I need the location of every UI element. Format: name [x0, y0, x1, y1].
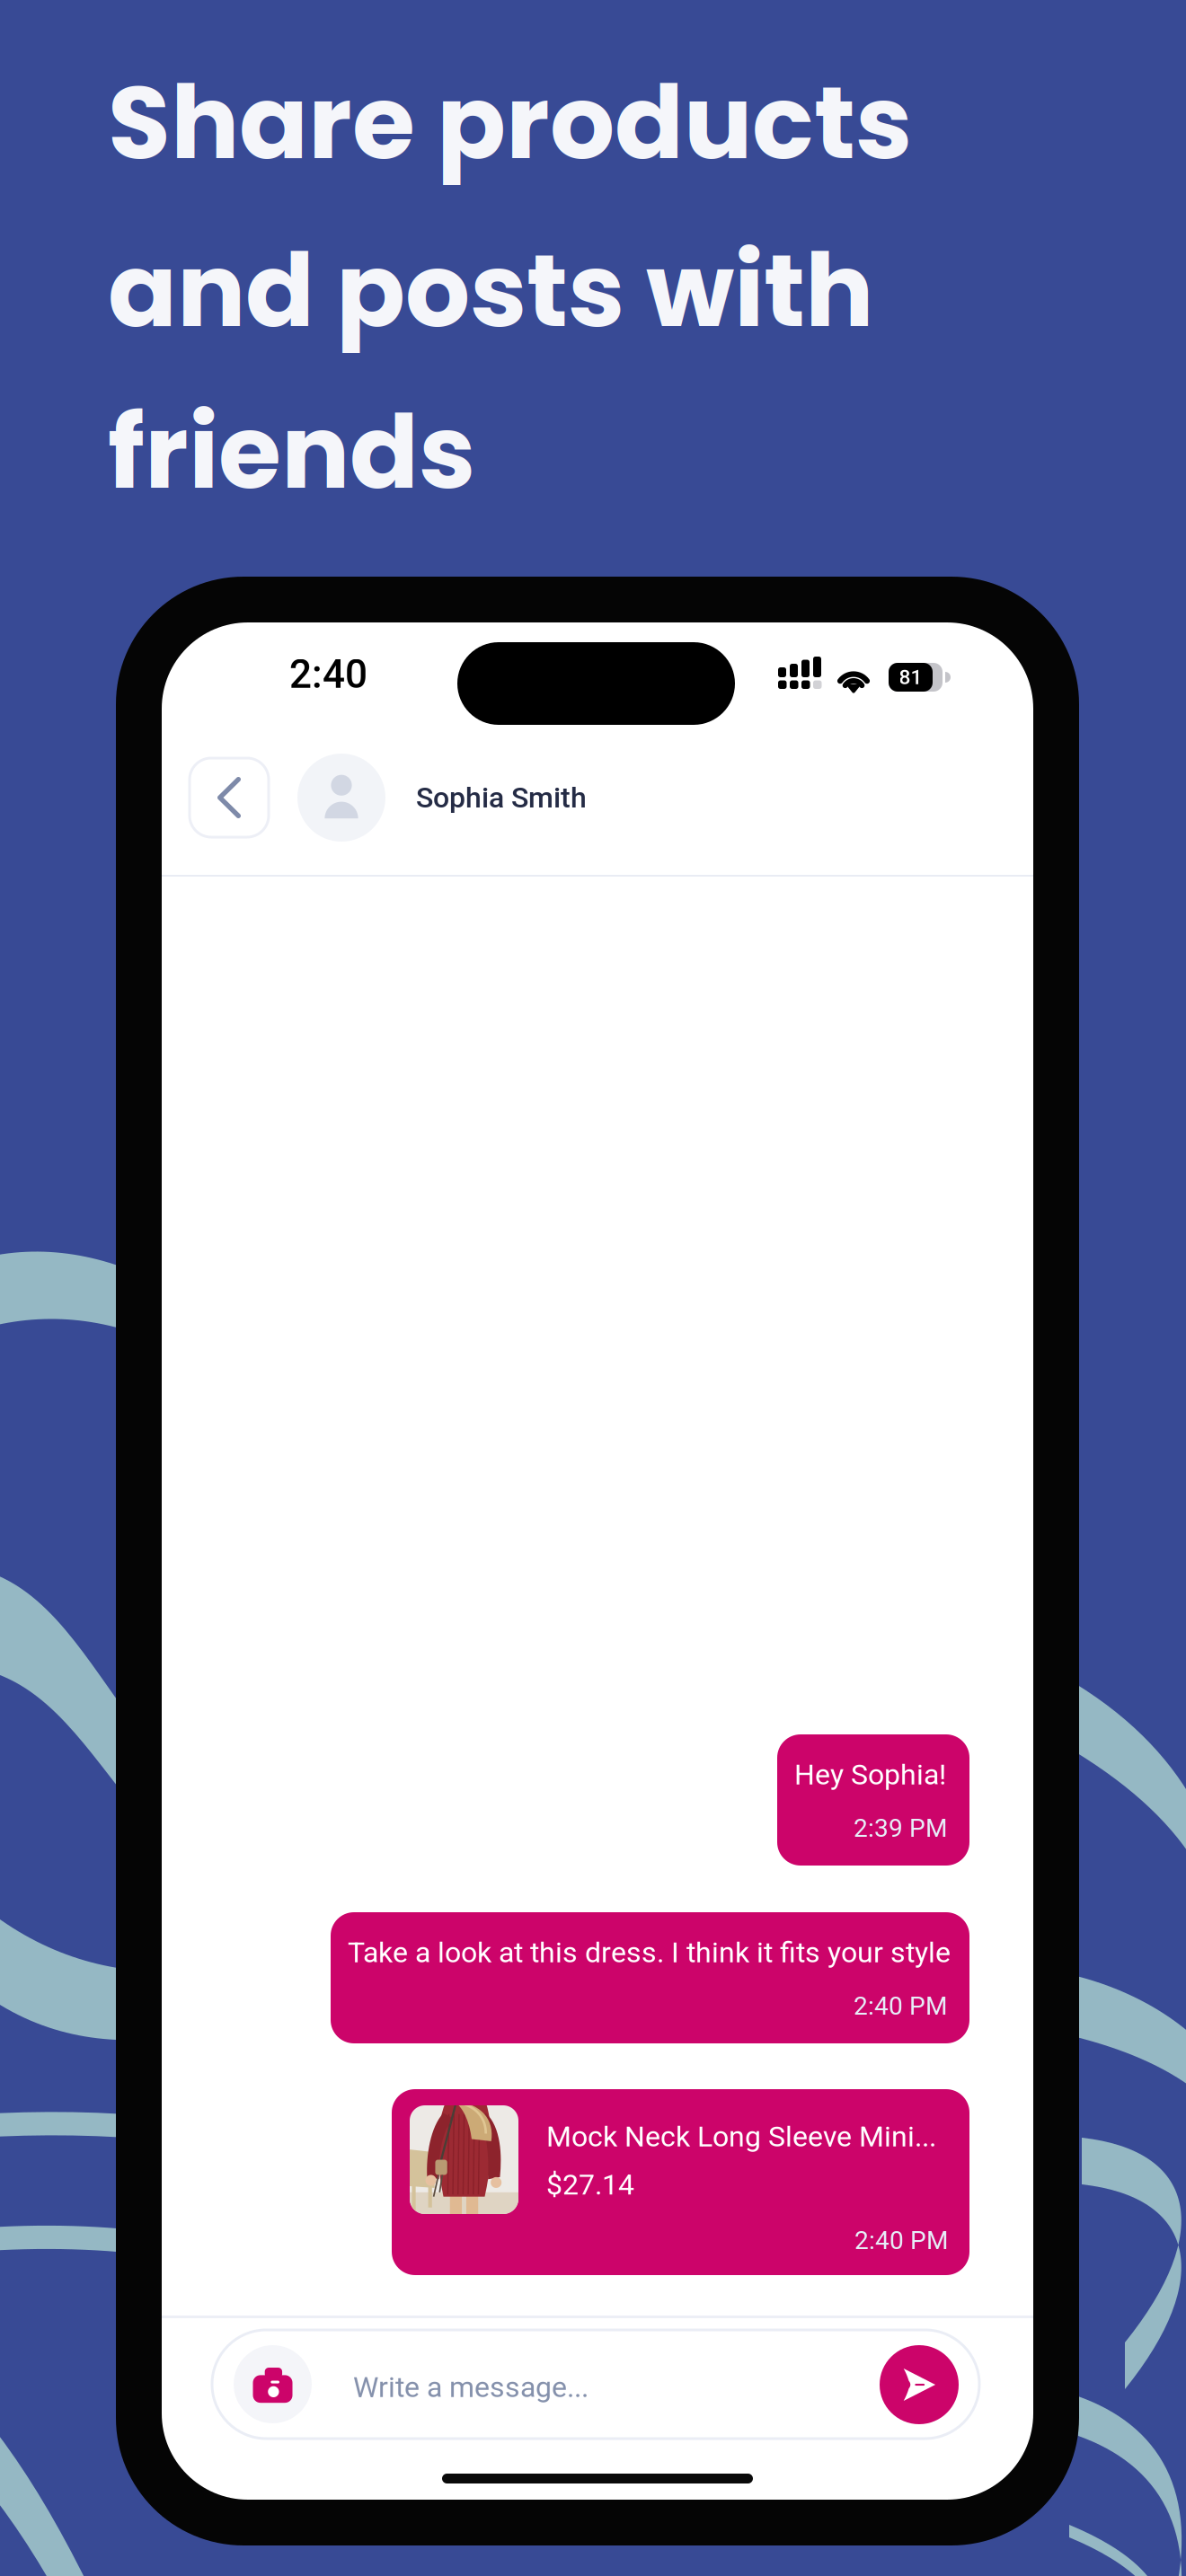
staticText: friends [108, 381, 475, 523]
staticText: Share products [108, 51, 912, 194]
button[interactable]: Add photo [234, 2345, 312, 2423]
button[interactable]: Back [190, 758, 269, 837]
staticText: 2:40 PM [854, 1991, 947, 2021]
staticText: and posts with [108, 219, 873, 362]
staticText: Hey Sophia! [794, 1758, 946, 1791]
staticText: Write a message... [353, 2370, 589, 2404]
staticText: 81 [899, 665, 922, 689]
staticText: 2:40 PM [854, 2226, 948, 2255]
staticText: 2:39 PM [854, 1813, 947, 1843]
button[interactable]: Send [880, 2345, 959, 2424]
staticText: Take a look at this dress. I think it fi… [348, 1936, 951, 1969]
staticText: $27.14 [546, 2168, 634, 2201]
button[interactable]: Sophia Smith [297, 754, 587, 842]
staticText: 2:40 [289, 651, 367, 698]
staticText: Mock Neck Long Sleeve Mini... [546, 2120, 936, 2153]
staticText: Sophia Smith [416, 781, 587, 814]
